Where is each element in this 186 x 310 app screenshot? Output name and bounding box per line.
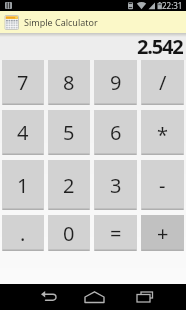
button[interactable]: -: [141, 160, 184, 210]
staticText: 2.542: [137, 33, 183, 60]
button[interactable]: 5: [48, 110, 90, 155]
staticText: 5: [63, 119, 75, 146]
staticText: 0: [63, 220, 75, 247]
staticText: 2: [63, 172, 75, 199]
staticText: 6: [110, 119, 122, 146]
button[interactable]: Simple Calculator: [0, 11, 186, 33]
staticText: *: [157, 121, 169, 148]
staticText: 22:31: [162, 0, 183, 11]
staticText: 4: [17, 119, 29, 146]
button[interactable]: 8: [48, 60, 90, 105]
button[interactable]: 6: [94, 110, 137, 155]
button[interactable]: =: [94, 215, 137, 251]
button[interactable]: /: [141, 60, 184, 105]
button[interactable]: 9: [94, 60, 137, 105]
button[interactable]: [124, 284, 186, 310]
button[interactable]: 1: [2, 160, 44, 210]
button[interactable]: 7: [2, 60, 44, 105]
staticText: +: [157, 220, 169, 247]
staticText: 9: [110, 69, 122, 96]
button[interactable]: *: [141, 110, 184, 155]
button[interactable]: +: [141, 215, 184, 251]
staticText: 8: [63, 69, 75, 96]
staticText: =: [110, 220, 122, 247]
button[interactable]: 0: [48, 215, 90, 251]
staticText: -: [159, 172, 166, 199]
button[interactable]: 3: [94, 160, 137, 210]
staticText: Simple Calculator: [24, 16, 98, 28]
button[interactable]: .: [2, 215, 44, 251]
button[interactable]: 2: [48, 160, 90, 210]
button[interactable]: [62, 284, 124, 310]
staticText: 7: [17, 69, 29, 96]
staticText: 1: [17, 172, 29, 199]
staticText: .: [20, 220, 26, 247]
button[interactable]: 4: [2, 110, 44, 155]
staticText: /: [159, 69, 167, 96]
button[interactable]: [0, 284, 62, 310]
staticText: 3: [110, 172, 122, 199]
